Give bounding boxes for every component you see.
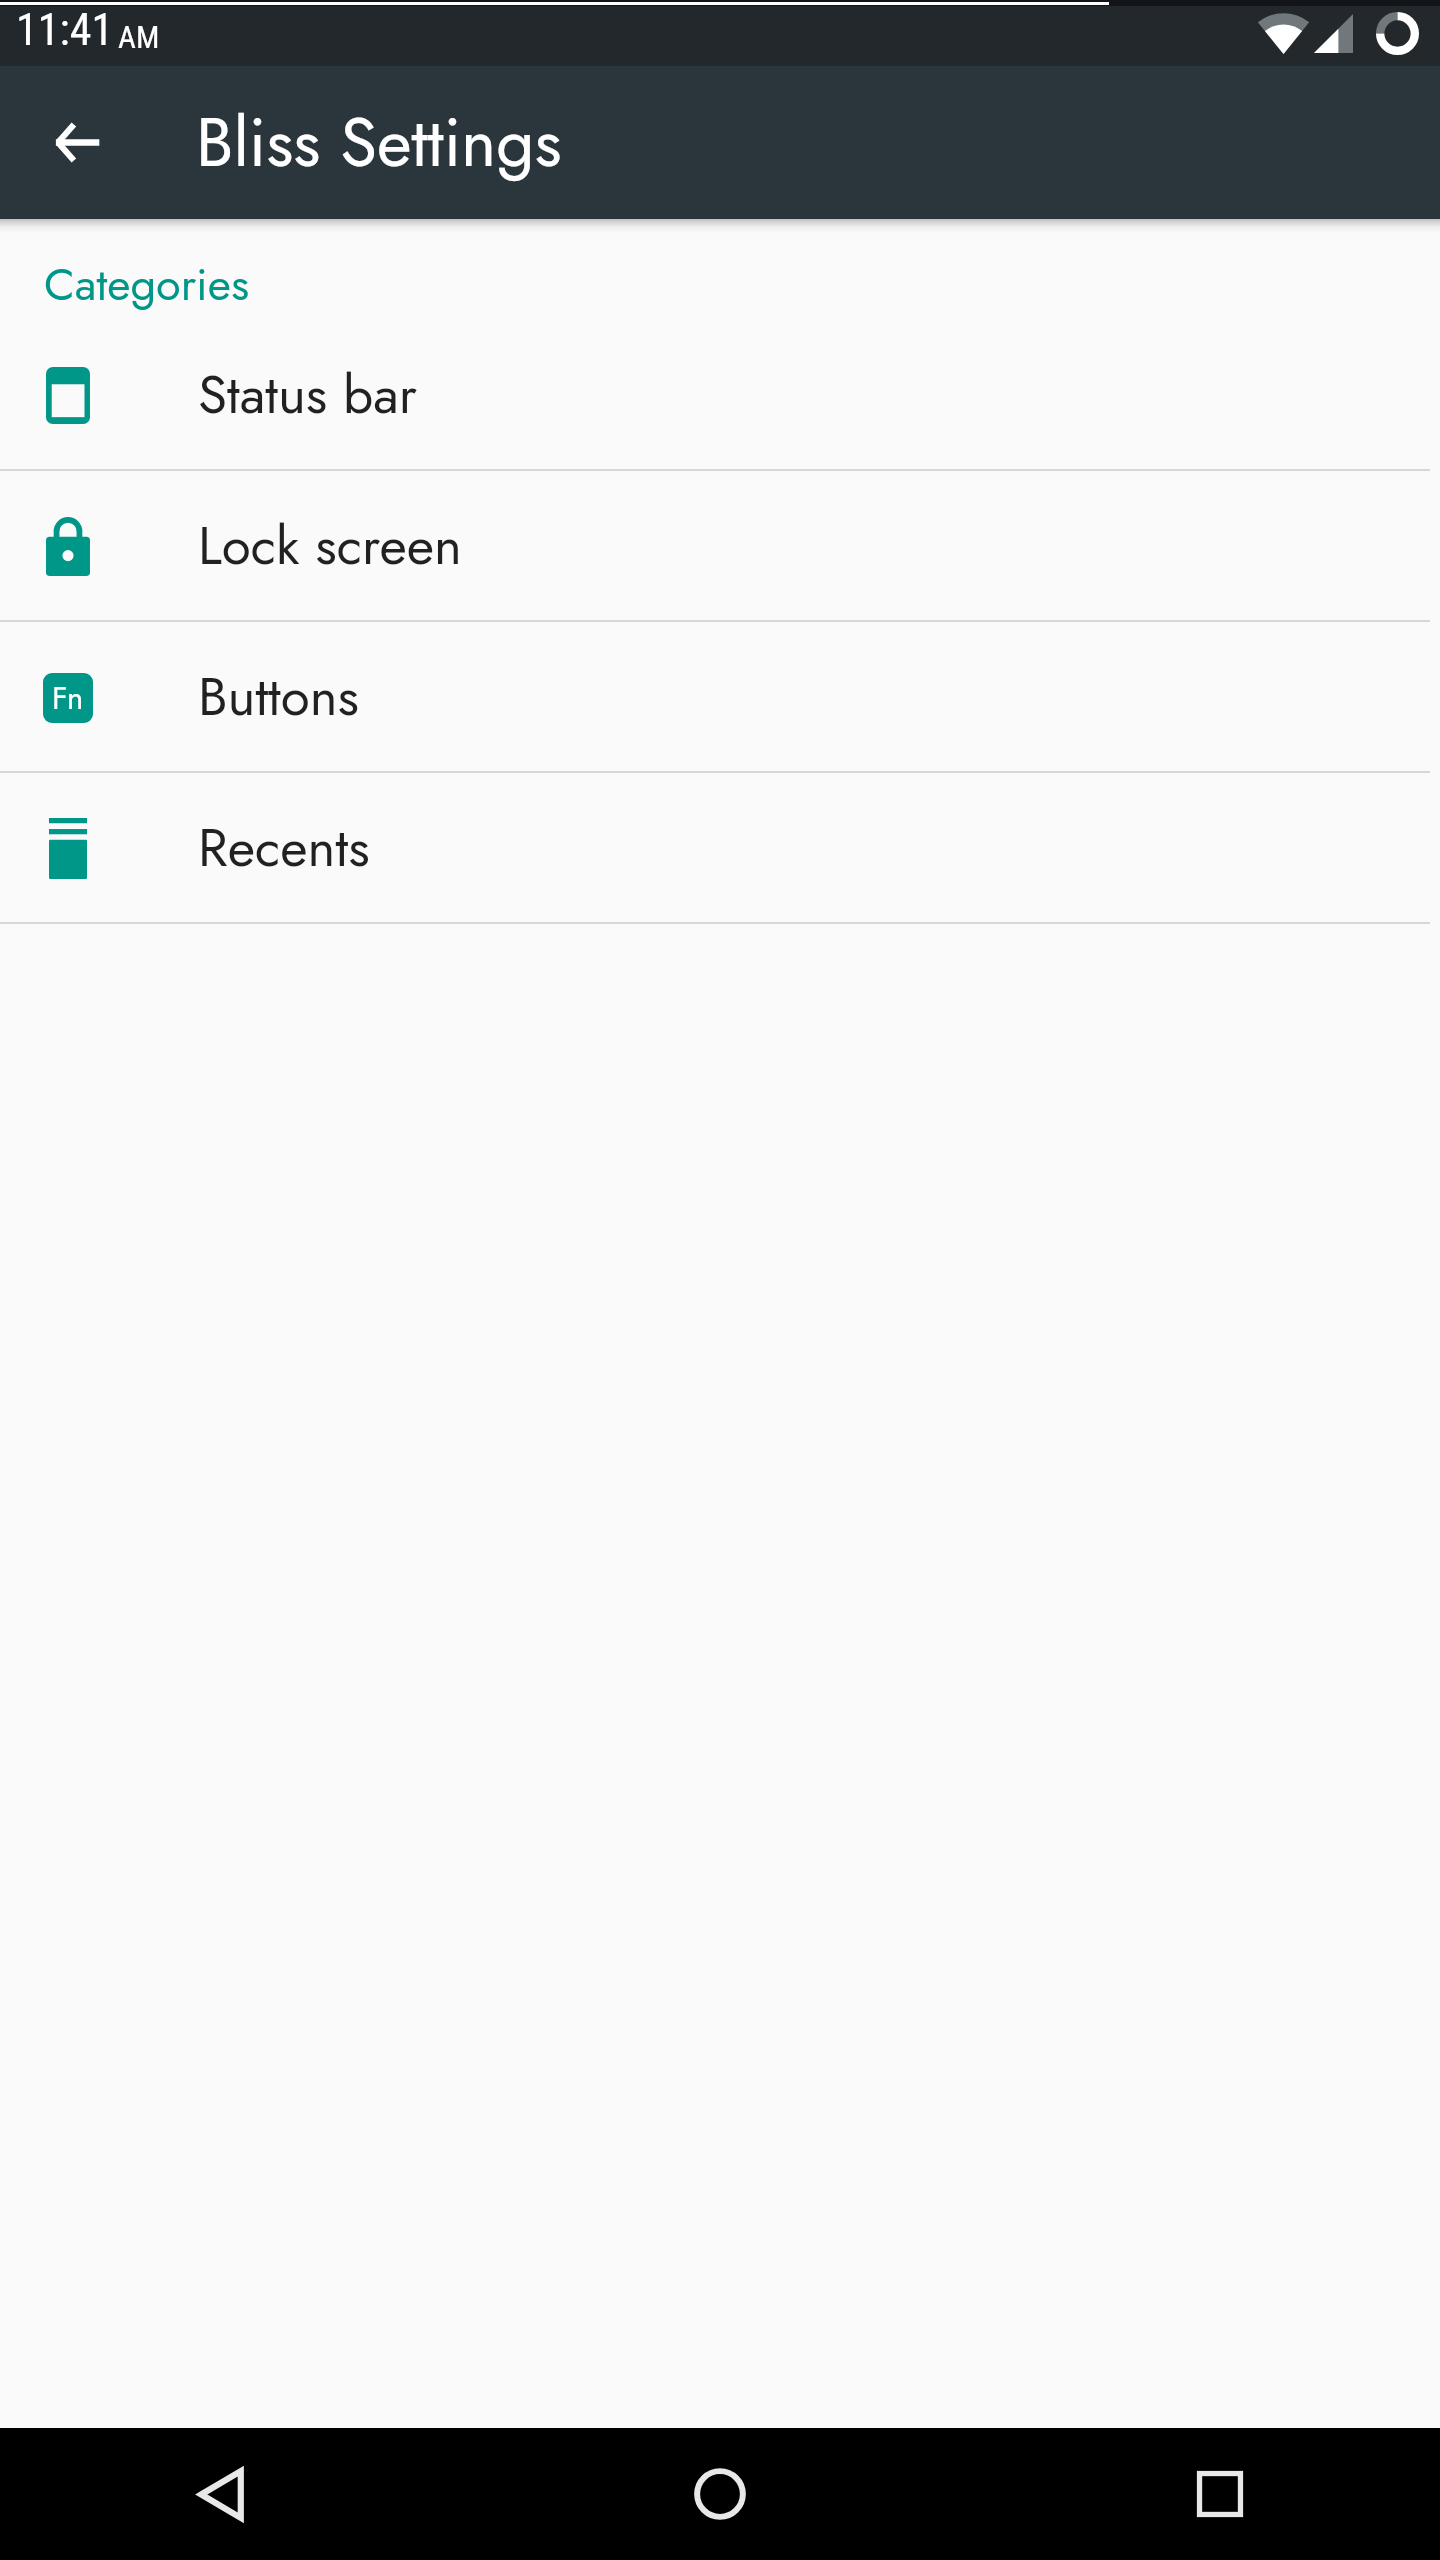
staticText: Status bar bbox=[198, 356, 417, 433]
button[interactable]: Lock screen bbox=[0, 471, 1440, 620]
button[interactable]: Navigate up bbox=[0, 66, 154, 219]
staticText: Buttons bbox=[198, 658, 359, 735]
staticText: Recents bbox=[198, 809, 370, 886]
staticText: Lock screen bbox=[198, 507, 462, 584]
staticText: AM bbox=[118, 19, 160, 55]
button[interactable]: Recents bbox=[0, 773, 1440, 922]
button[interactable]: Home bbox=[654, 2428, 786, 2560]
staticText: Bliss Settings bbox=[196, 94, 562, 191]
staticText: Categories bbox=[44, 252, 250, 317]
staticText: Fn bbox=[52, 676, 84, 721]
staticText: 11:41 bbox=[16, 4, 114, 56]
button[interactable]: Status bar bbox=[0, 320, 1440, 469]
button[interactable]: Recent apps bbox=[1154, 2428, 1286, 2560]
button[interactable]: Back bbox=[155, 2428, 287, 2560]
button[interactable]: Fn bbox=[0, 622, 1440, 771]
